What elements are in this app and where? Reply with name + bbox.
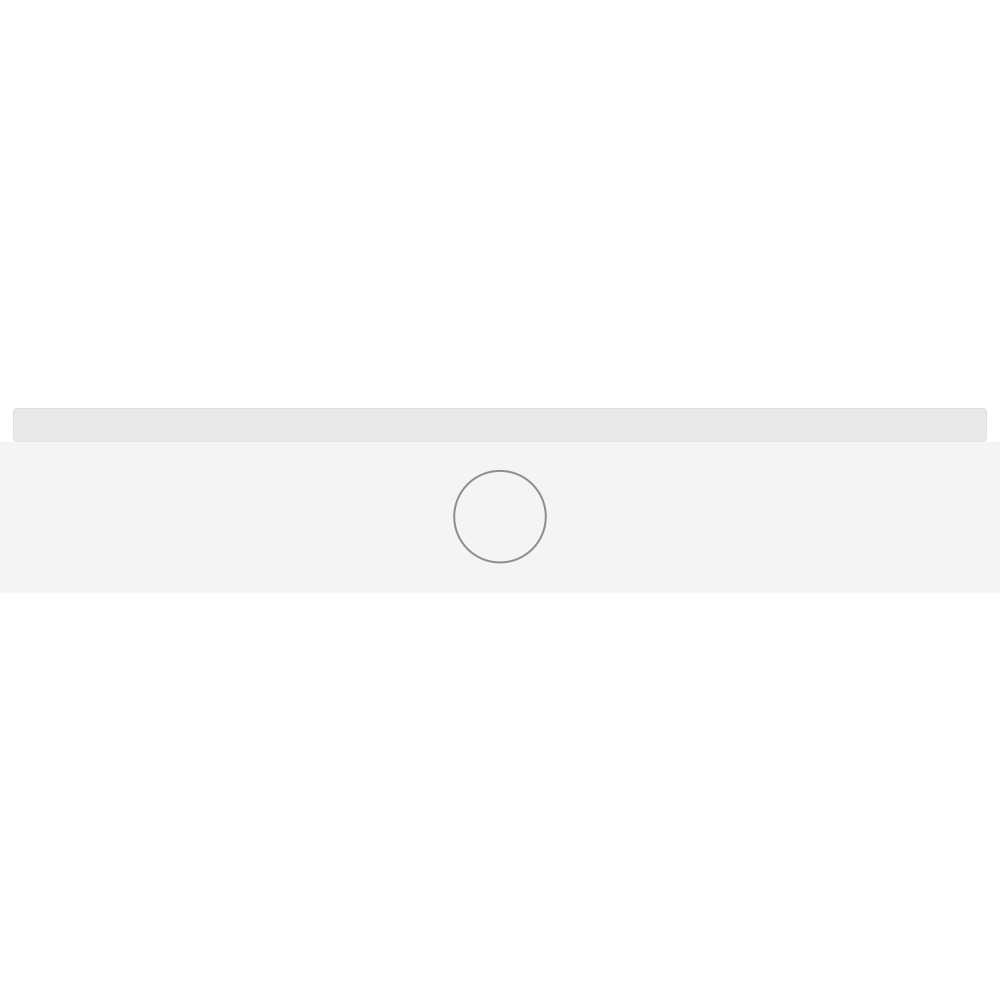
button[interactable]: Shutter xyxy=(454,471,546,562)
